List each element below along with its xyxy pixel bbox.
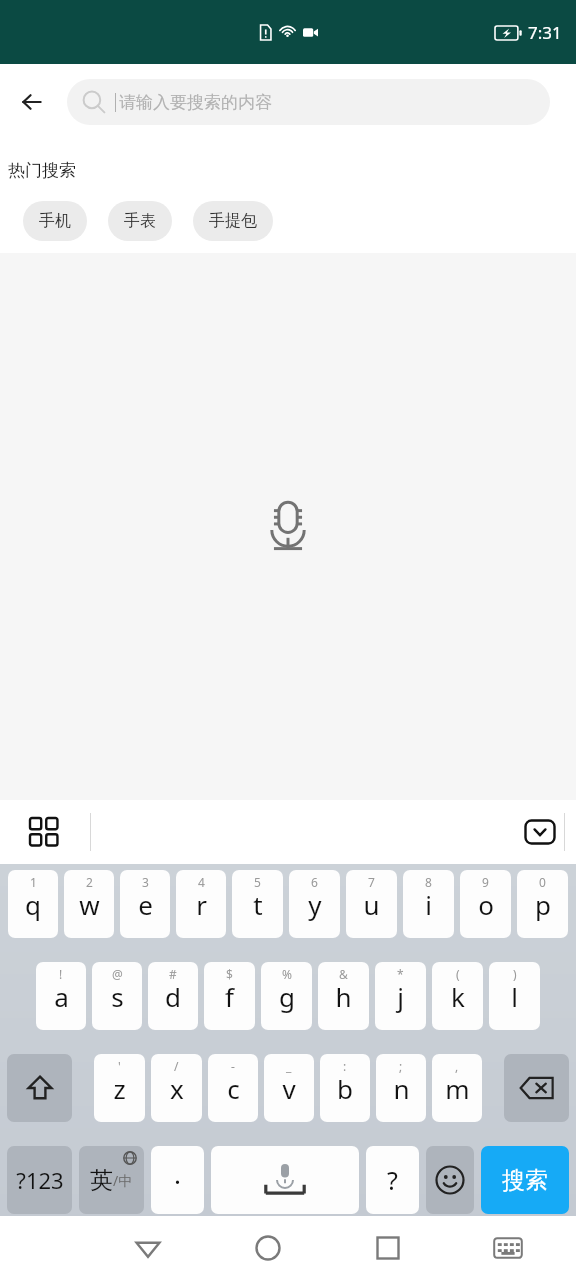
- button[interactable]: Space: [211, 1146, 359, 1214]
- staticText: u: [363, 887, 380, 922]
- staticText: ·: [174, 1163, 181, 1198]
- staticText: 英: [90, 1166, 113, 1195]
- other: Delete: [520, 1076, 554, 1100]
- button[interactable]: w: [64, 870, 114, 938]
- staticText: z: [113, 1071, 126, 1106]
- button[interactable]: n: [376, 1054, 426, 1122]
- button[interactable]: t: [232, 870, 283, 938]
- button[interactable]: 手表: [108, 201, 172, 241]
- button[interactable]: 搜索: [481, 1146, 569, 1214]
- button[interactable]: Back: [8, 78, 56, 126]
- staticText: 手机: [39, 211, 71, 231]
- staticText: c: [227, 1071, 240, 1106]
- button[interactable]: Delete: [504, 1054, 569, 1122]
- staticText: 6: [311, 874, 318, 890]
- staticText: 热门搜索: [8, 160, 76, 181]
- button[interactable]: y: [289, 870, 340, 938]
- staticText: 8: [425, 874, 432, 890]
- staticText: d: [165, 979, 181, 1014]
- button[interactable]: Back: [120, 1220, 176, 1276]
- staticText: 请输入要搜索的内容: [119, 92, 272, 113]
- button[interactable]: ?: [366, 1146, 419, 1214]
- staticText: *: [397, 966, 404, 982]
- staticText: ;: [399, 1058, 403, 1074]
- staticText: k: [451, 979, 465, 1014]
- staticText: g: [279, 979, 295, 1014]
- button[interactable]: s: [92, 962, 142, 1030]
- staticText: 3: [142, 874, 149, 890]
- button[interactable]: c: [208, 1054, 258, 1122]
- button[interactable]: u: [346, 870, 397, 938]
- staticText: 2: [86, 874, 93, 890]
- button[interactable]: q: [8, 870, 58, 938]
- button[interactable]: j: [375, 962, 426, 1030]
- staticText: o: [478, 887, 494, 922]
- staticText: f: [225, 979, 234, 1014]
- staticText: y: [308, 887, 322, 922]
- staticText: j: [397, 979, 404, 1014]
- staticText: v: [282, 1071, 296, 1106]
- staticText: 7: [368, 874, 375, 890]
- button[interactable]: 手提包: [193, 201, 273, 241]
- staticText: #: [169, 966, 177, 982]
- button[interactable]: h: [318, 962, 369, 1030]
- staticText: $: [226, 966, 233, 982]
- button[interactable]: g: [261, 962, 312, 1030]
- staticText: ,: [455, 1058, 459, 1074]
- staticText: m: [445, 1071, 470, 1106]
- staticText: 1: [30, 874, 37, 890]
- button[interactable]: [7, 1054, 72, 1122]
- button[interactable]: Keyboard layouts: [22, 810, 66, 854]
- staticText: 7:31: [528, 21, 562, 44]
- button[interactable]: p: [517, 870, 568, 938]
- staticText: s: [111, 979, 124, 1014]
- staticText: 4: [198, 874, 205, 890]
- staticText: (: [456, 966, 460, 982]
- staticText: x: [170, 1071, 184, 1106]
- staticText: !: [59, 966, 63, 982]
- button[interactable]: e: [120, 870, 170, 938]
- button[interactable]: ?123: [7, 1146, 72, 1214]
- staticText: w: [79, 887, 100, 922]
- other: Emoji: [435, 1165, 465, 1195]
- button[interactable]: i: [403, 870, 454, 938]
- button[interactable]: Hide keyboard: [516, 808, 564, 856]
- staticText: q: [25, 887, 41, 922]
- staticText: /中: [113, 1171, 133, 1190]
- button[interactable]: x: [151, 1054, 202, 1122]
- button[interactable]: b: [320, 1054, 370, 1122]
- staticText: b: [337, 1071, 353, 1106]
- staticText: &: [339, 966, 348, 982]
- button[interactable]: z: [94, 1054, 145, 1122]
- button[interactable]: 英: [79, 1146, 144, 1214]
- button[interactable]: ·: [151, 1146, 204, 1214]
- button[interactable]: r: [176, 870, 226, 938]
- staticText: ': [118, 1058, 121, 1074]
- button[interactable]: m: [432, 1054, 482, 1122]
- button[interactable]: l: [489, 962, 540, 1030]
- staticText: :: [343, 1058, 347, 1074]
- button[interactable]: Emoji: [426, 1146, 474, 1214]
- button[interactable]: f: [204, 962, 255, 1030]
- staticText: i: [425, 887, 432, 922]
- button[interactable]: a: [36, 962, 86, 1030]
- staticText: %: [282, 966, 292, 982]
- staticText: t: [253, 887, 263, 922]
- button[interactable]: Keyboard: [480, 1220, 536, 1276]
- button[interactable]: 手机: [23, 201, 87, 241]
- staticText: n: [393, 1071, 410, 1106]
- staticText: _: [286, 1058, 292, 1074]
- button[interactable]: v: [264, 1054, 314, 1122]
- other: Space: [245, 1160, 325, 1200]
- button[interactable]: 请输入要搜索的内容: [67, 79, 550, 125]
- button[interactable]: k: [432, 962, 483, 1030]
- staticText: e: [138, 887, 153, 922]
- staticText: 搜索: [502, 1166, 548, 1195]
- button[interactable]: Recents: [360, 1220, 416, 1276]
- button[interactable]: Home: [240, 1220, 296, 1276]
- button[interactable]: d: [148, 962, 198, 1030]
- staticText: 9: [482, 874, 489, 890]
- button[interactable]: o: [460, 870, 511, 938]
- staticText: 5: [254, 874, 261, 890]
- staticText: p: [535, 887, 551, 922]
